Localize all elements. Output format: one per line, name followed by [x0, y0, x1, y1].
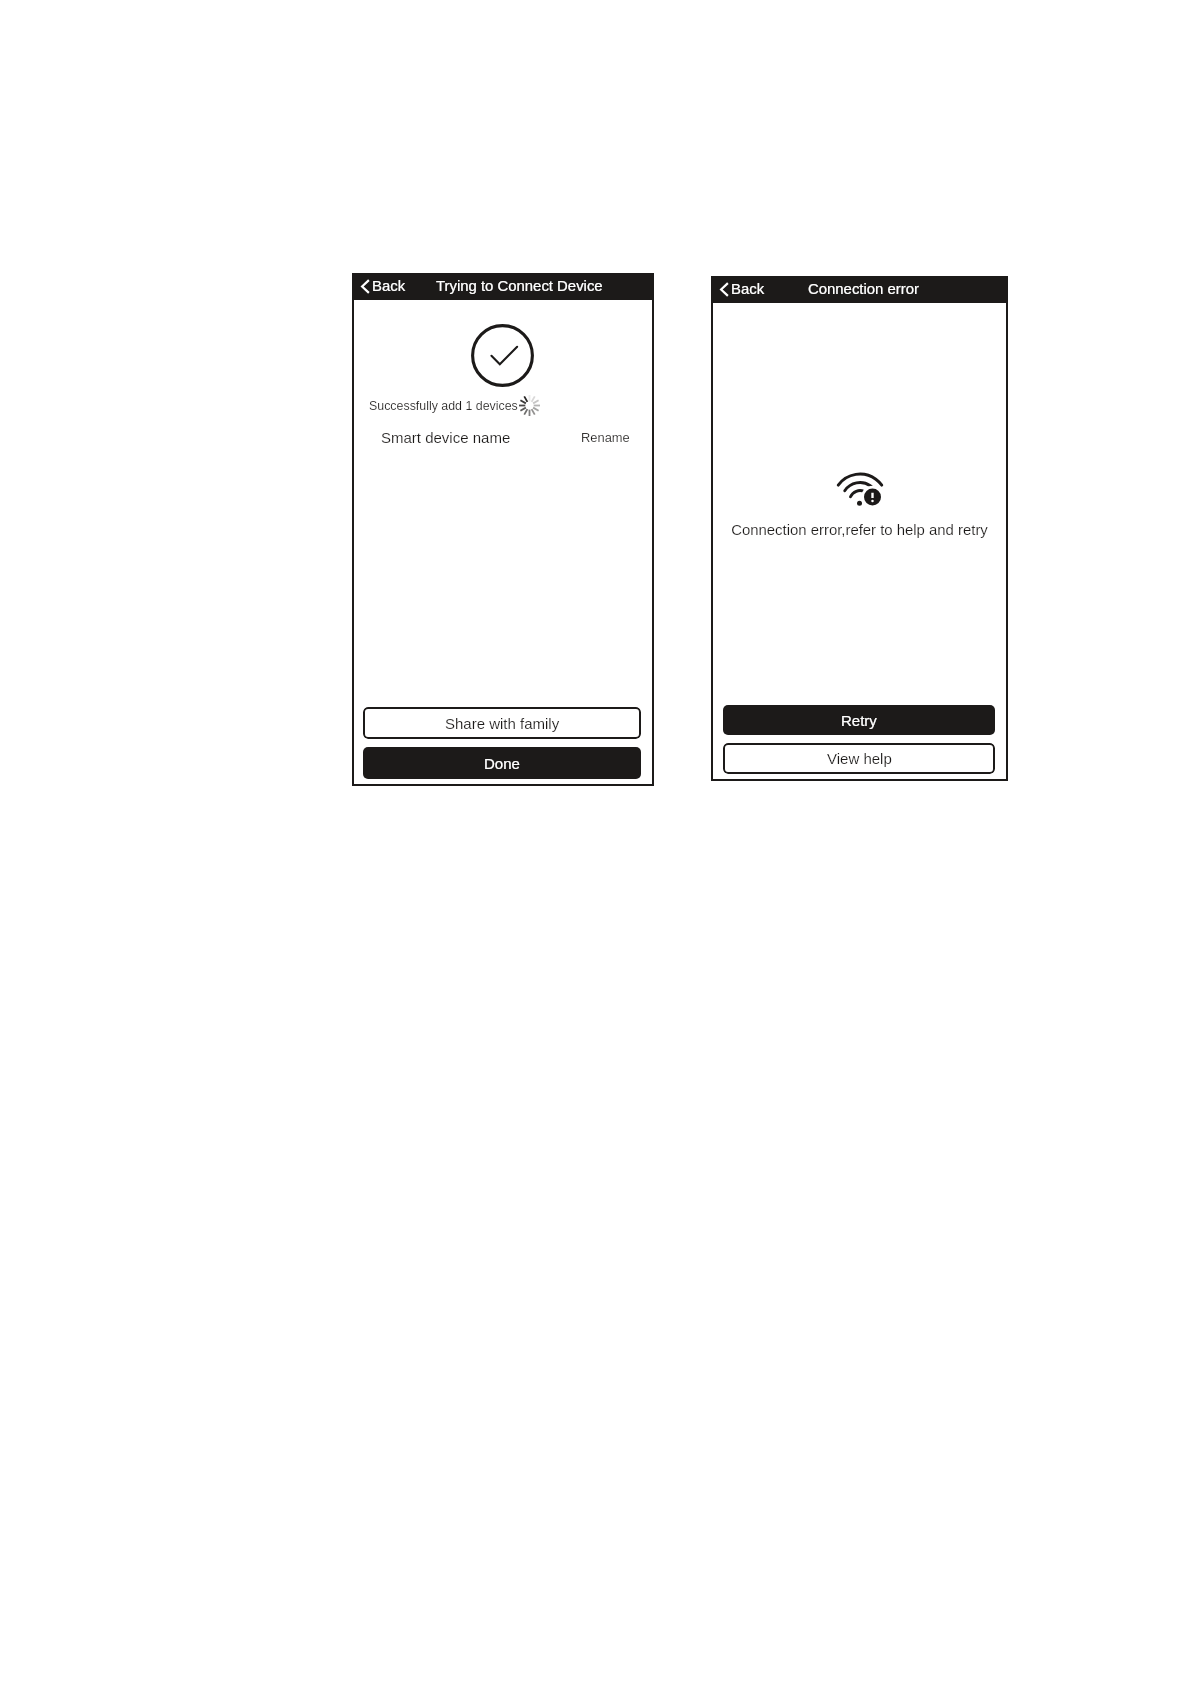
- staticText: Back: [731, 281, 765, 298]
- staticText: Connection error,refer to help and retry: [731, 522, 988, 539]
- button[interactable]: Back: [352, 273, 414, 300]
- button[interactable]: View help: [723, 743, 995, 774]
- button[interactable]: Done: [363, 747, 641, 779]
- staticText: Trying to Connect Device: [436, 278, 603, 295]
- staticText: Retry: [841, 712, 877, 729]
- button[interactable]: Rename: [581, 425, 630, 449]
- button[interactable]: Back: [711, 276, 773, 303]
- button[interactable]: Smart device name: [352, 425, 654, 449]
- staticText: Successfully add 1 devices: [369, 399, 518, 413]
- staticText: Rename: [581, 430, 630, 444]
- button[interactable]: Retry: [723, 705, 995, 735]
- staticText: Smart device name: [381, 429, 511, 446]
- staticText: View help: [827, 750, 892, 767]
- staticText: Done: [484, 755, 520, 772]
- staticText: Back: [372, 278, 406, 295]
- staticText: Connection error: [808, 281, 919, 298]
- staticText: Share with family: [445, 715, 560, 732]
- button[interactable]: Share with family: [363, 707, 641, 739]
